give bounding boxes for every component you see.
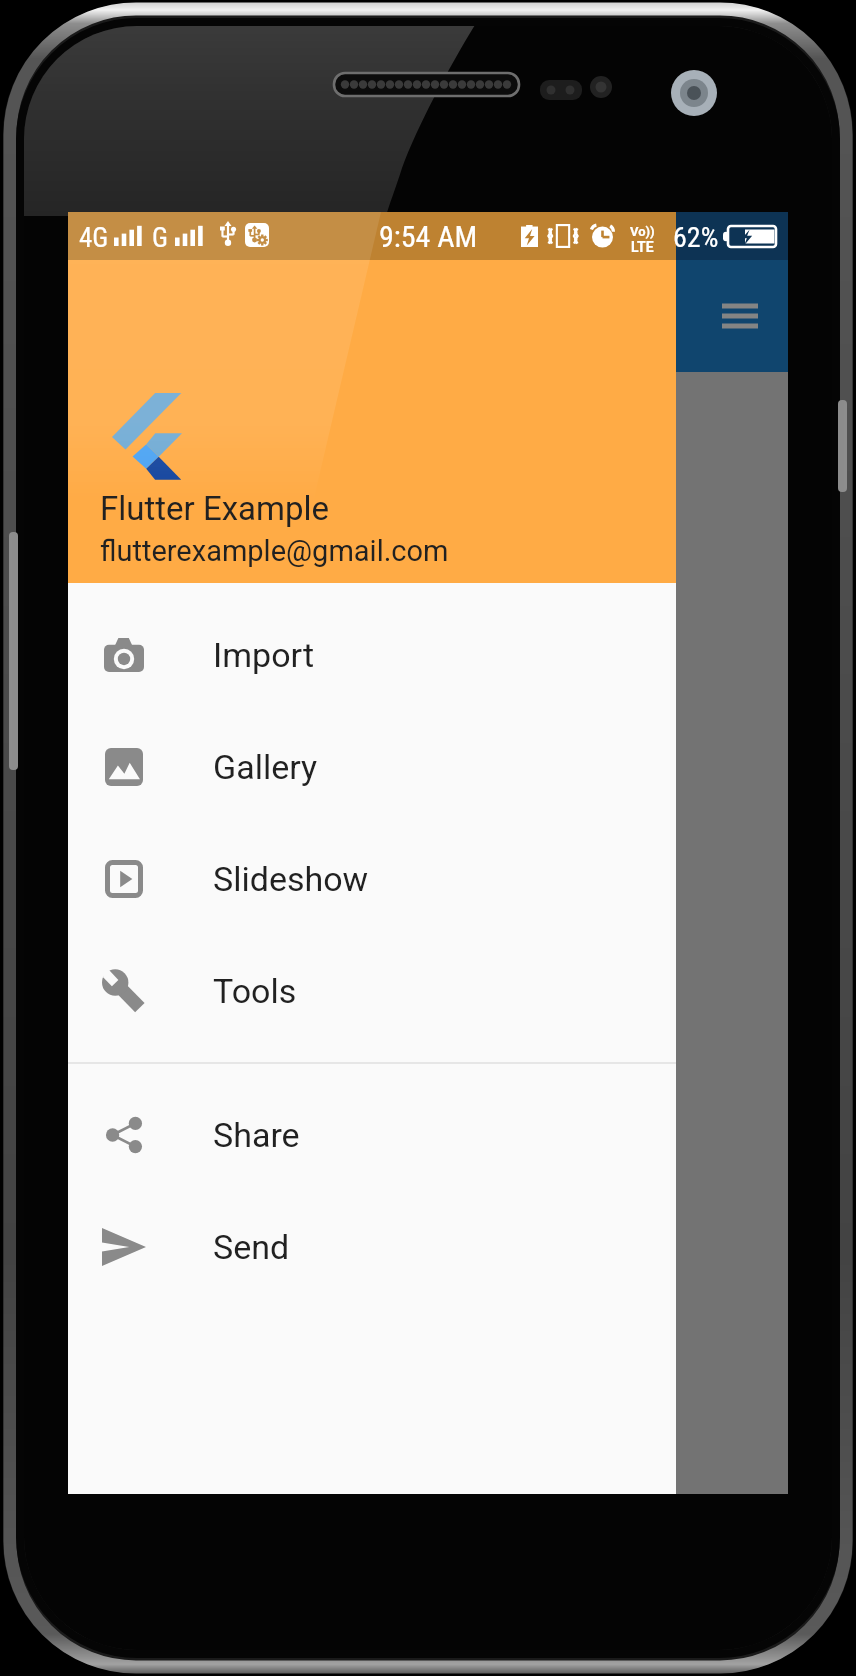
staticText: flutterexample@gmail.com [100, 534, 449, 568]
staticText: 9:54 AM [379, 219, 478, 254]
staticText: Tools [213, 971, 297, 1011]
staticText: LTE [631, 239, 654, 255]
button[interactable]: Gallery [68, 711, 676, 823]
staticText: Vo)) [630, 224, 655, 239]
staticText: Send [213, 1227, 290, 1267]
staticText: Import [213, 635, 315, 675]
button[interactable]: Tools [68, 935, 676, 1047]
staticText: 62% [673, 221, 719, 254]
button[interactable]: Share [68, 1079, 676, 1191]
staticText: G [152, 222, 168, 254]
button[interactable]: Send [68, 1191, 676, 1303]
button[interactable]: Import [68, 599, 676, 711]
staticText: Slideshow [213, 859, 369, 899]
staticText: Flutter Example [100, 489, 329, 528]
button[interactable]: Flutter Example [68, 212, 676, 583]
staticText: Share [213, 1115, 300, 1155]
button[interactable]: Slideshow [68, 823, 676, 935]
button[interactable]: Open navigation menu [712, 288, 768, 344]
staticText: 4G [79, 222, 109, 254]
staticText: Gallery [213, 747, 318, 787]
